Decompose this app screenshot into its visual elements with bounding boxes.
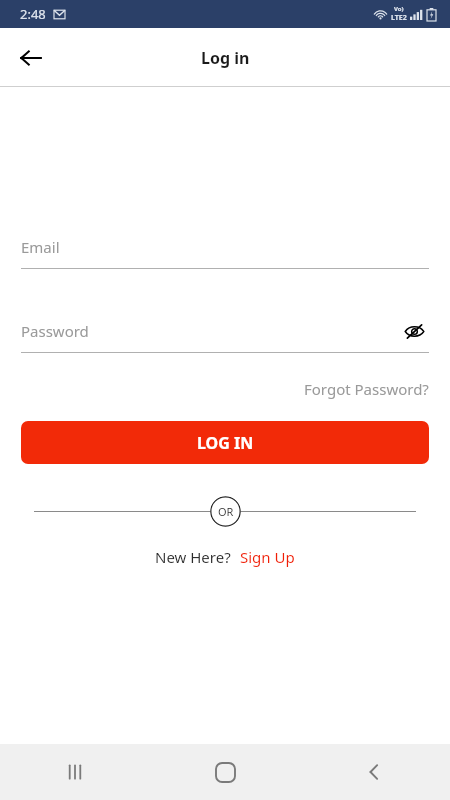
staticText: LOG IN <box>197 432 254 454</box>
button[interactable]: Back <box>10 37 52 79</box>
button[interactable]: Sign Up <box>240 545 295 569</box>
button[interactable]: Email <box>21 232 429 262</box>
staticText: LTE2 <box>391 13 407 23</box>
staticText: Sign Up <box>240 547 295 567</box>
staticText: Forgot Password? <box>304 379 429 399</box>
button[interactable]: LOG IN <box>21 421 429 464</box>
button[interactable]: Recent apps <box>0 744 150 800</box>
button[interactable]: Home <box>150 744 300 800</box>
button[interactable]: Back <box>300 744 450 800</box>
staticText: OR <box>218 504 234 519</box>
staticText: Email <box>21 237 60 257</box>
button[interactable]: Forgot Password? <box>304 377 429 401</box>
staticText: Log in <box>201 47 250 69</box>
staticText: 2:48 <box>20 5 46 23</box>
staticText: New Here? <box>155 547 231 567</box>
staticText: Vo) <box>394 5 404 13</box>
button[interactable]: Show password <box>399 316 429 346</box>
button[interactable]: Password <box>21 316 429 346</box>
staticText: Password <box>21 321 89 341</box>
